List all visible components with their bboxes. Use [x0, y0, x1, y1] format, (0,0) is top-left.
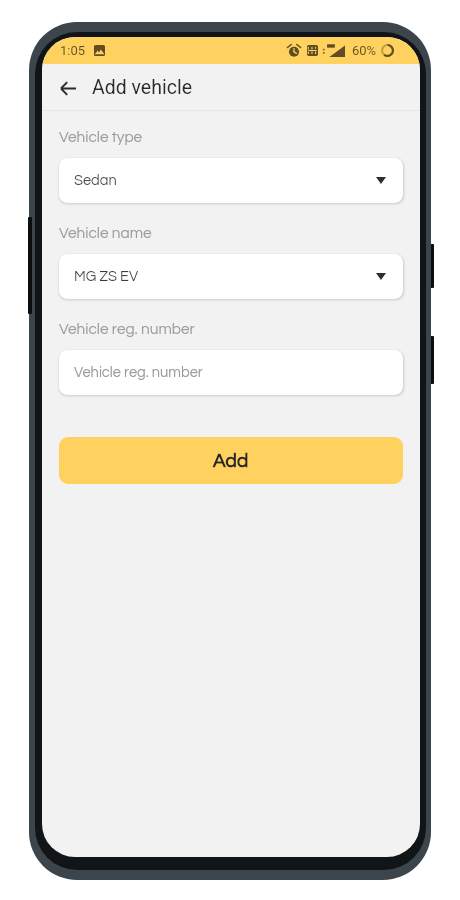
- staticText: MG ZS EV: [74, 269, 139, 284]
- button[interactable]: Sedan: [59, 158, 403, 203]
- staticText: Add: [213, 451, 249, 471]
- staticText: 60%: [352, 43, 377, 58]
- button[interactable]: MG ZS EV: [59, 254, 403, 299]
- button[interactable]: Add: [59, 437, 403, 484]
- button[interactable]: Back: [60, 76, 84, 100]
- staticText: 1:05: [60, 43, 86, 58]
- staticText: Vehicle name: [59, 225, 152, 241]
- staticText: Sedan: [74, 173, 117, 188]
- staticText: Vehicle reg. number: [74, 365, 203, 380]
- button[interactable]: Vehicle reg. number: [59, 350, 403, 395]
- staticText: Add vehicle: [92, 76, 192, 99]
- staticText: Vehicle reg. number: [59, 321, 195, 337]
- staticText: Vehicle type: [59, 129, 143, 145]
